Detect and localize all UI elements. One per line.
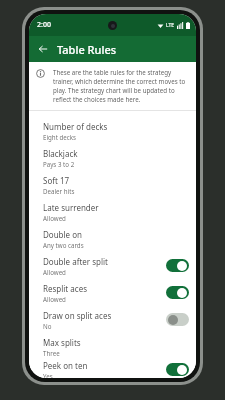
staticText: Three: [43, 349, 60, 357]
button[interactable]: Late surrender: [29, 198, 196, 225]
button[interactable]: Draw on split aces: [29, 306, 196, 333]
staticText: Soft 17: [43, 175, 70, 186]
button[interactable]: Off: [166, 313, 189, 326]
staticText: LTE: [166, 22, 175, 29]
staticText: Resplit aces: [43, 283, 88, 294]
staticText: Double on: [43, 229, 82, 240]
button[interactable]: Double after split: [29, 252, 196, 279]
button[interactable]: Number of decks: [29, 117, 196, 144]
staticText: Allowed: [43, 268, 66, 276]
button[interactable]: Soft 17: [29, 171, 196, 198]
staticText: Pays 3 to 2: [43, 160, 75, 168]
button[interactable]: On: [166, 286, 189, 299]
staticText: Double after split: [43, 256, 108, 267]
button[interactable]: Peek on ten: [29, 360, 196, 378]
staticText: Dealer hits: [43, 187, 75, 195]
staticText: Allowed: [43, 295, 66, 303]
button[interactable]: Resplit aces: [29, 279, 196, 306]
button[interactable]: Back: [34, 40, 52, 58]
button[interactable]: On: [166, 363, 189, 376]
staticText: Eight decks: [43, 133, 77, 141]
staticText: Peek on ten: [43, 360, 88, 371]
staticText: 2:00: [37, 20, 51, 30]
staticText: Number of decks: [43, 121, 108, 132]
button[interactable]: Double on: [29, 225, 196, 252]
staticText: Allowed: [43, 214, 66, 222]
staticText: No: [43, 322, 52, 330]
staticText: Draw on split aces: [43, 310, 112, 321]
staticText: Yes: [43, 372, 53, 378]
staticText: Any two cards: [43, 241, 84, 249]
button[interactable]: Blackjack: [29, 144, 196, 171]
staticText: Table Rules: [57, 42, 117, 57]
staticText: Late surrender: [43, 202, 99, 213]
button[interactable]: On: [166, 259, 189, 272]
staticText: Max splits: [43, 337, 81, 348]
staticText: Blackjack: [43, 148, 78, 159]
button[interactable]: Max splits: [29, 333, 196, 360]
staticText: These are the table rules for the strate…: [53, 68, 186, 104]
